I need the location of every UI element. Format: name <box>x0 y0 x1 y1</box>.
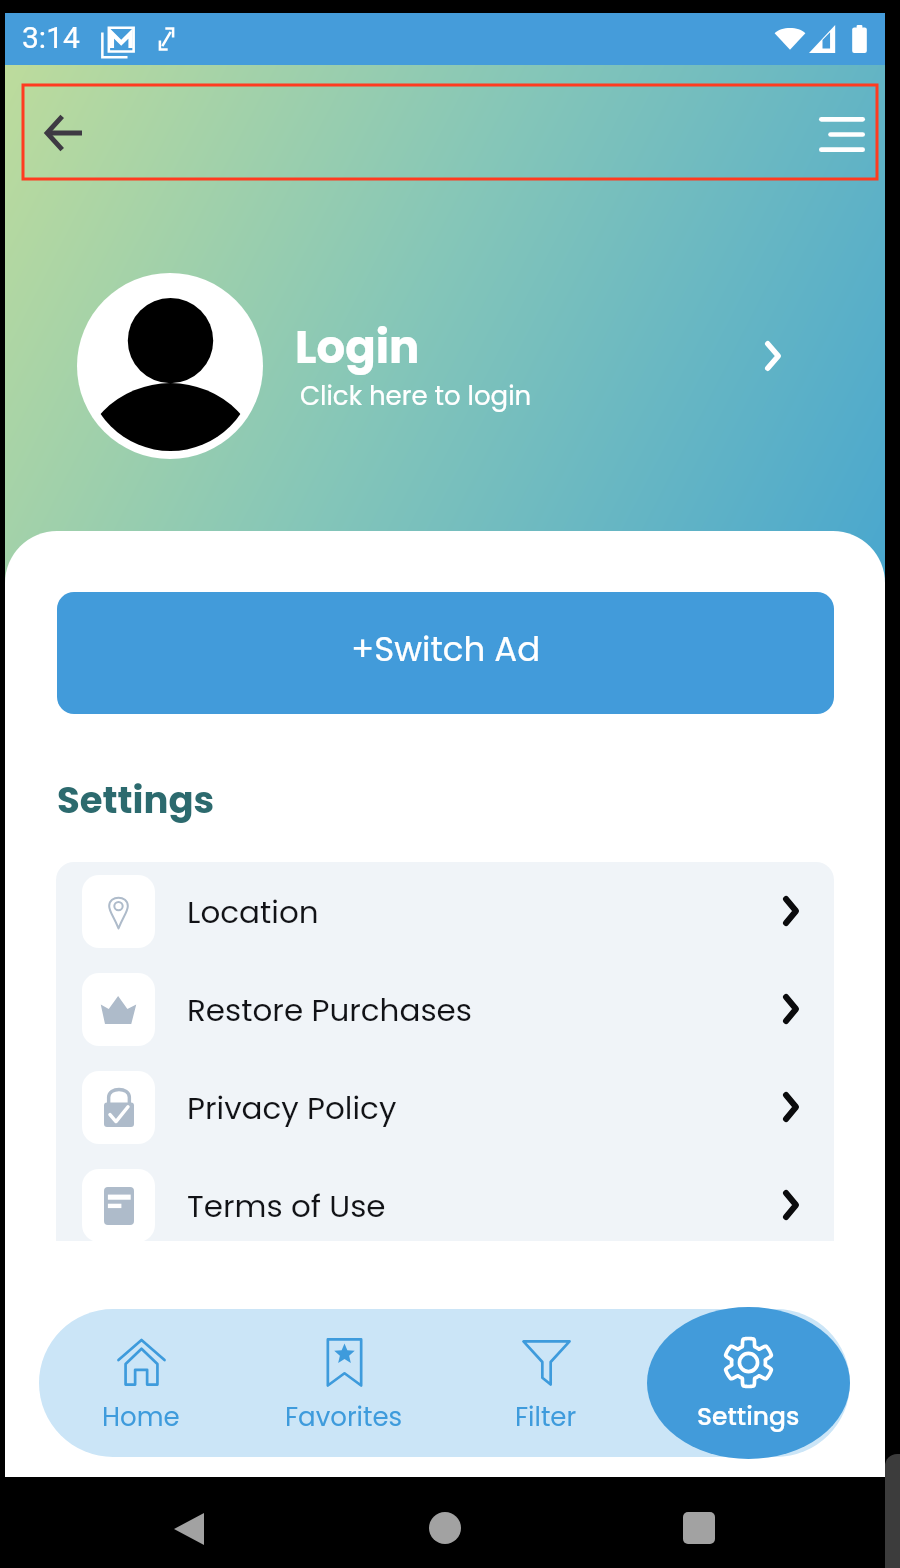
staticText: Filter <box>515 1399 577 1435</box>
button[interactable]: Menu <box>809 101 875 167</box>
button[interactable]: Home <box>39 1309 242 1457</box>
button[interactable]: Open login <box>743 326 803 386</box>
staticText: Location <box>187 890 319 933</box>
staticText: Favorites <box>285 1399 403 1435</box>
button[interactable]: Privacy Policy <box>56 1058 834 1156</box>
button[interactable]: Settings <box>647 1307 850 1459</box>
button[interactable] <box>22 84 878 180</box>
staticText: Click here to login <box>300 378 532 414</box>
staticText: Settings <box>57 774 215 826</box>
staticText: Terms of Use <box>187 1184 386 1227</box>
button[interactable]: Filter <box>444 1309 647 1457</box>
staticText: Settings <box>697 1399 800 1434</box>
staticText: +Switch Ad <box>351 625 541 673</box>
staticText: Restore Purchases <box>187 988 472 1031</box>
button[interactable]: Favorites <box>242 1309 445 1457</box>
button[interactable] <box>77 273 263 459</box>
button[interactable]: Location <box>56 862 834 960</box>
button[interactable]: Terms of Use <box>56 1156 834 1241</box>
staticText: Privacy Policy <box>187 1086 397 1129</box>
button[interactable]: Restore Purchases <box>56 960 834 1058</box>
button[interactable]: Back <box>29 98 98 167</box>
staticText: Home <box>102 1399 180 1435</box>
button[interactable]: +Switch Ad <box>57 592 834 714</box>
staticText: 3:14 <box>22 20 80 55</box>
staticText: Login <box>295 316 420 379</box>
